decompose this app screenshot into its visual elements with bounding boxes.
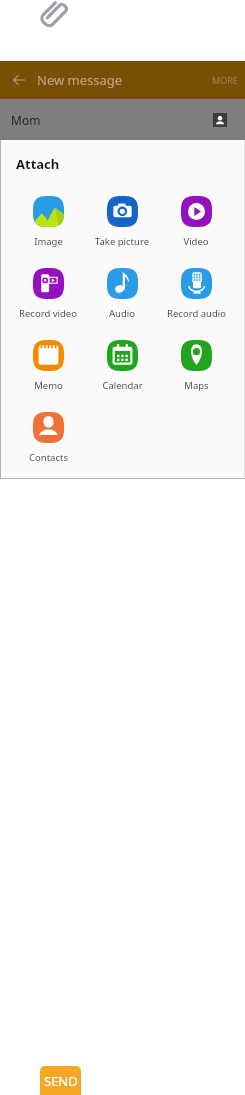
staticText: Contacts: [29, 451, 68, 464]
button[interactable]: SEND: [40, 1066, 81, 1095]
button[interactable]: Contacts: [11, 401, 85, 473]
button[interactable]: Record audio: [159, 257, 233, 329]
staticText: Calendar: [102, 379, 143, 392]
button[interactable]: Image: [11, 185, 85, 257]
button[interactable]: Choose contact: [202, 99, 238, 140]
button[interactable]: Calendar: [85, 329, 159, 401]
button[interactable]: Maps: [159, 329, 233, 401]
staticText: Video: [183, 235, 209, 248]
staticText: Image: [34, 235, 63, 248]
button[interactable]: Navigate up: [0, 61, 37, 99]
staticText: Mom: [11, 112, 41, 128]
button[interactable]: MORE: [200, 61, 245, 99]
staticText: Memo: [34, 379, 63, 392]
staticText: Record audio: [167, 307, 226, 320]
button[interactable]: Video: [159, 185, 233, 257]
button[interactable]: Memo: [11, 329, 85, 401]
button[interactable]: Audio: [85, 257, 159, 329]
staticText: Audio: [109, 307, 135, 320]
staticText: Maps: [184, 379, 209, 392]
staticText: Record video: [19, 307, 77, 320]
staticText: Take picture: [95, 235, 149, 248]
button[interactable]: Take picture: [85, 185, 159, 257]
staticText: Attach: [16, 155, 60, 173]
staticText: SEND: [44, 1072, 78, 1090]
staticText: New message: [37, 71, 123, 89]
button[interactable]: Record video: [11, 257, 85, 329]
other: Attach file: [36, 0, 70, 31]
staticText: MORE: [212, 74, 238, 86]
